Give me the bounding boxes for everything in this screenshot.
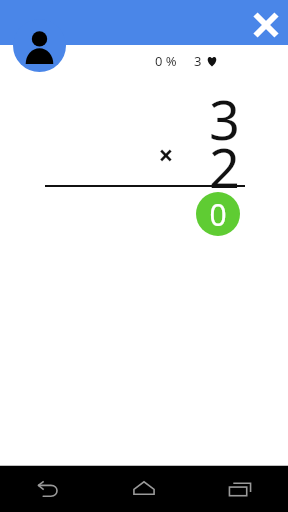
button[interactable]: Close <box>245 4 287 46</box>
staticText: × <box>146 137 186 172</box>
staticText: 0 <box>209 194 227 235</box>
button[interactable]: Back <box>0 466 96 512</box>
button[interactable]: Recent apps <box>192 466 288 512</box>
staticText: 2 <box>140 130 240 204</box>
staticText: 3 <box>140 82 240 156</box>
button[interactable]: 0 <box>196 192 240 236</box>
button[interactable]: Home <box>96 466 192 512</box>
button[interactable]: Profile <box>13 19 66 72</box>
staticText: 3 <box>194 52 202 70</box>
staticText: 0 % <box>155 52 177 70</box>
